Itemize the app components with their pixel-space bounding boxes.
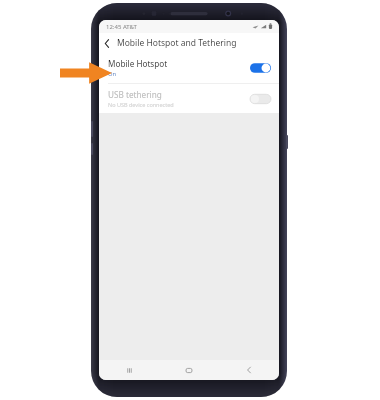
button[interactable]: Recent apps xyxy=(99,360,159,380)
button[interactable]: Back xyxy=(99,35,115,51)
staticText: No USB device connected xyxy=(108,101,174,108)
button[interactable]: USB tethering xyxy=(99,84,279,113)
button[interactable]: Back xyxy=(219,360,279,380)
staticText: Mobile Hotspot and Tethering xyxy=(117,37,237,49)
button[interactable]: Mobile Hotspot toggle, on xyxy=(250,62,271,74)
staticText: On xyxy=(108,70,117,78)
other: USB tethering toggle, off xyxy=(250,93,271,105)
staticText: 12:45 AT&T xyxy=(106,23,137,31)
staticText: Mobile Hotspot xyxy=(108,58,168,69)
other: Pointer highlighting Mobile Hotspot xyxy=(60,61,112,85)
button[interactable]: Home xyxy=(159,360,219,380)
button[interactable]: Mobile Hotspot xyxy=(99,53,279,83)
staticText: USB tethering xyxy=(108,89,162,100)
